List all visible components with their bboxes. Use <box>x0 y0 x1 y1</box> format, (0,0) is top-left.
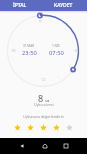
staticText: KAYDET <box>54 2 73 9</box>
staticText: Uyku süresi <box>34 102 54 107</box>
button[interactable]: 1 NİS <box>43 44 69 57</box>
button[interactable]: 31 MAR <box>16 44 42 57</box>
staticText: Uykunuzu değerlendirin <box>23 114 64 119</box>
staticText: 07:50 <box>49 49 64 57</box>
staticText: sa <box>45 98 50 103</box>
button[interactable]: Rate 1 stars <box>14 124 21 131</box>
button[interactable]: KAYDET <box>40 0 87 11</box>
staticText: 6 <box>75 48 78 53</box>
button[interactable]: Rate 2 stars <box>27 124 34 131</box>
staticText: İPTAL <box>13 2 27 9</box>
button[interactable]: Back <box>16 140 27 151</box>
staticText: 18 <box>11 48 16 53</box>
button[interactable]: Rate 4 stars <box>53 124 60 131</box>
staticText: 1 NİS <box>52 44 60 48</box>
staticText: 23:50 <box>22 49 37 57</box>
button[interactable]: Recent apps <box>60 140 71 151</box>
button[interactable]: İPTAL <box>0 0 40 11</box>
button[interactable]: Rate 3 stars <box>40 124 47 131</box>
staticText: 8 <box>38 92 44 104</box>
button[interactable]: Rate 5 stars <box>66 124 73 131</box>
staticText: 12 <box>41 77 46 82</box>
button[interactable]: Home <box>39 140 50 151</box>
staticText: 31 MAR <box>23 44 35 48</box>
